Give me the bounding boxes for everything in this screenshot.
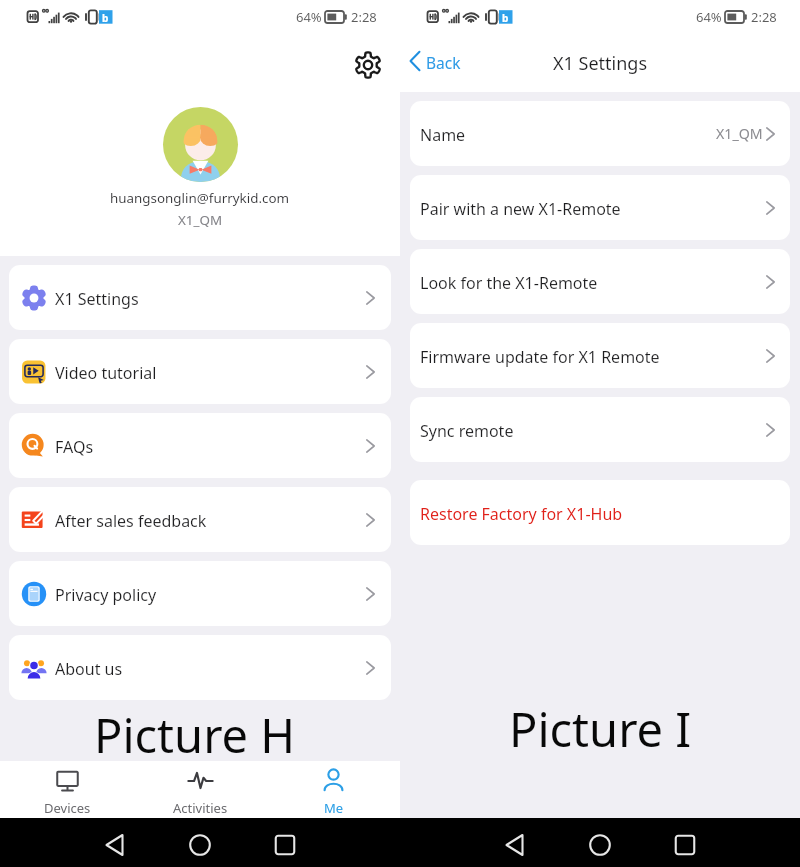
staticText: 2:28 (751, 8, 777, 26)
button[interactable]: About us (9, 635, 391, 700)
staticText: Video tutorial (55, 362, 157, 384)
staticText: Me (324, 799, 344, 817)
staticText: FAQs (55, 436, 94, 458)
button[interactable]: X1 Settings (9, 265, 391, 330)
staticText: Devices (44, 799, 91, 817)
staticText: Sync remote (420, 420, 514, 442)
staticText: Name (420, 124, 466, 146)
staticText: b (102, 11, 109, 25)
button[interactable]: Pair with a new X1-Remote (410, 175, 790, 240)
button[interactable]: Settings (354, 51, 382, 79)
button[interactable]: Back (406, 44, 463, 78)
staticText: Activities (173, 799, 228, 817)
button[interactable]: Me (267, 761, 400, 818)
staticText: Pair with a new X1-Remote (420, 198, 621, 220)
button[interactable]: Home (184, 829, 216, 861)
button[interactable]: Back (100, 829, 132, 861)
staticText: X1_QM (716, 124, 763, 143)
button[interactable]: Home (584, 829, 616, 861)
staticText: 2:28 (351, 8, 377, 26)
staticText: huangsonglin@furrykid.com (110, 189, 290, 207)
staticText: After sales feedback (55, 510, 207, 532)
button[interactable]: Back (500, 829, 532, 861)
button[interactable]: Activities (134, 761, 267, 818)
button[interactable]: Name (410, 101, 790, 166)
staticText: 64% (296, 8, 322, 26)
button[interactable]: Firmware update for X1 Remote (410, 323, 790, 388)
staticText: Picture I (509, 697, 692, 757)
button[interactable]: FAQs (9, 413, 391, 478)
staticText: Restore Factory for X1-Hub (420, 503, 623, 525)
staticText: X1 Settings (553, 51, 648, 76)
button[interactable]: Devices (0, 761, 134, 818)
staticText: X1 Settings (55, 288, 139, 310)
button[interactable]: Video tutorial (9, 339, 391, 404)
staticText: Firmware update for X1 Remote (420, 346, 660, 368)
staticText: b (502, 11, 509, 25)
button[interactable]: Recents (669, 829, 701, 861)
button[interactable]: After sales feedback (9, 487, 391, 552)
button[interactable]: Restore Factory for X1-Hub (410, 480, 790, 545)
staticText: X1_QM (178, 211, 223, 229)
button[interactable]: Privacy policy (9, 561, 391, 626)
staticText: About us (55, 658, 123, 680)
staticText: 64% (696, 8, 722, 26)
button[interactable]: Sync remote (410, 397, 790, 462)
staticText: Look for the X1-Remote (420, 272, 598, 294)
staticText: Back (426, 52, 461, 73)
button[interactable]: Look for the X1-Remote (410, 249, 790, 314)
staticText: Privacy policy (55, 584, 157, 606)
button[interactable]: Recents (269, 829, 301, 861)
staticText: Picture H (94, 703, 296, 763)
